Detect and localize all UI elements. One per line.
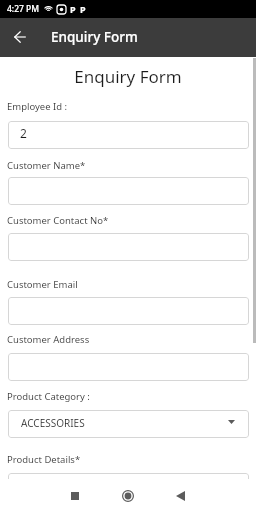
staticText: 4:27 PM xyxy=(7,3,40,15)
button[interactable] xyxy=(8,353,249,381)
staticText: Employee Id : xyxy=(7,100,68,113)
button[interactable] xyxy=(8,177,249,205)
button[interactable]: Recent apps xyxy=(55,479,95,512)
button[interactable] xyxy=(8,297,249,325)
staticText: P xyxy=(70,3,76,15)
staticText: Customer Email xyxy=(7,278,78,291)
button[interactable]: ACCESSORIES xyxy=(8,410,249,438)
staticText: Customer Name* xyxy=(7,159,86,172)
staticText: Product Details* xyxy=(7,453,81,466)
button[interactable] xyxy=(8,233,249,261)
staticText: Enquiry Form xyxy=(51,28,138,46)
staticText: P xyxy=(80,3,86,15)
staticText: Enquiry Form xyxy=(0,65,256,88)
staticText: Customer Contact No* xyxy=(7,214,109,227)
staticText: Customer Address xyxy=(7,333,90,346)
button[interactable]: Home xyxy=(108,479,148,512)
button[interactable]: Navigate up xyxy=(0,18,40,57)
button[interactable]: Back xyxy=(160,479,200,512)
staticText: 2 xyxy=(20,125,27,141)
staticText: ACCESSORIES xyxy=(21,416,85,430)
button[interactable] xyxy=(8,473,249,501)
staticText: Product Category : xyxy=(7,390,90,403)
button[interactable]: 2 xyxy=(8,121,249,149)
